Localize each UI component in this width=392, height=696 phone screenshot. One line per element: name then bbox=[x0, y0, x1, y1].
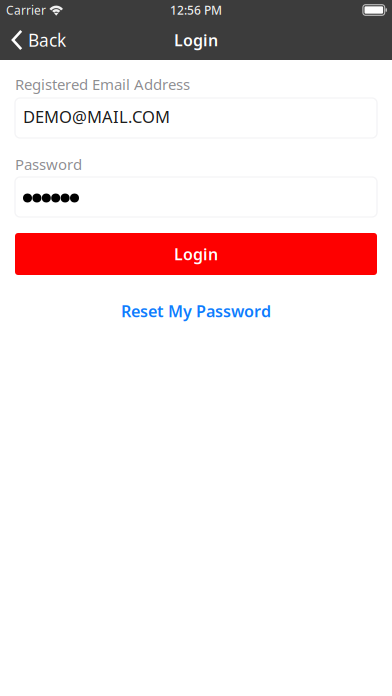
staticText: Login bbox=[174, 29, 218, 51]
staticText: Reset My Password bbox=[121, 300, 271, 322]
staticText: 12:56 PM bbox=[170, 2, 222, 18]
staticText: Back bbox=[28, 28, 66, 51]
staticText: DEMO@MAIL.COM bbox=[23, 105, 170, 128]
button[interactable]: Reset My Password bbox=[15, 300, 377, 321]
staticText: Login bbox=[174, 243, 218, 265]
staticText: Carrier bbox=[6, 2, 46, 18]
staticText: Password bbox=[15, 154, 82, 174]
button[interactable]: Back bbox=[0, 20, 74, 60]
staticText: Registered Email Address bbox=[15, 74, 190, 94]
button[interactable]: Login bbox=[15, 233, 377, 275]
button[interactable]: DEMO@MAIL.COM bbox=[15, 98, 377, 138]
button[interactable]: Password bbox=[15, 177, 377, 217]
